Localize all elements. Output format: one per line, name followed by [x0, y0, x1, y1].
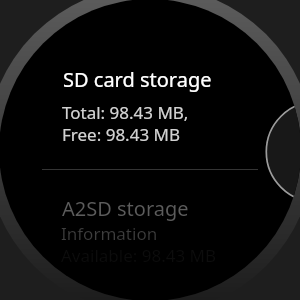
staticText: Total: 98.43 MB,	[62, 101, 189, 124]
button[interactable]: A2SD storage	[0, 188, 300, 268]
staticText: Available: 98.43 MB	[61, 244, 217, 267]
staticText: A2SD storage	[62, 195, 189, 222]
staticText: Free: 98.43 MB	[62, 123, 180, 146]
button[interactable]: SD card storage	[0, 58, 300, 150]
staticText: SD card storage	[63, 66, 212, 93]
staticText: Information	[61, 222, 158, 245]
other: Scroll position	[0, 0, 300, 300]
